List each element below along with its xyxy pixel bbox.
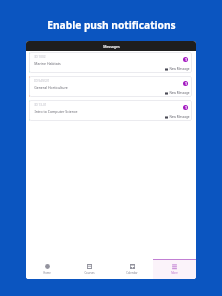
staticText: ID 13-01 xyxy=(34,103,47,107)
button[interactable]: Calendar xyxy=(110,259,153,279)
staticText: General Horticulture xyxy=(34,85,68,90)
button[interactable]: Courses xyxy=(68,259,110,279)
staticText: 1 xyxy=(185,106,187,110)
staticText: Home xyxy=(43,271,51,275)
button[interactable]: Home xyxy=(26,259,68,279)
staticText: 1 xyxy=(185,58,187,62)
staticText: New Message xyxy=(169,91,190,95)
staticText: Messages xyxy=(103,44,120,49)
staticText: ID 549/2/1 xyxy=(34,79,50,83)
staticText: Enable push notifications xyxy=(47,18,176,32)
staticText: New Message xyxy=(169,115,190,119)
button[interactable]: ID 1002 xyxy=(29,52,192,73)
button[interactable]: More xyxy=(153,259,196,279)
staticText: Intro to Computer Science xyxy=(34,109,78,114)
staticText: More xyxy=(171,271,178,275)
staticText: ID 1002 xyxy=(34,55,46,59)
staticText: Marine Habitats xyxy=(34,61,61,66)
button[interactable]: ID 549/2/1 xyxy=(29,76,192,97)
staticText: Courses xyxy=(84,271,95,275)
staticText: New Message xyxy=(169,67,190,71)
button[interactable]: ID 13-01 xyxy=(29,100,192,121)
staticText: Calendar xyxy=(126,271,138,275)
staticText: 1 xyxy=(185,82,187,86)
